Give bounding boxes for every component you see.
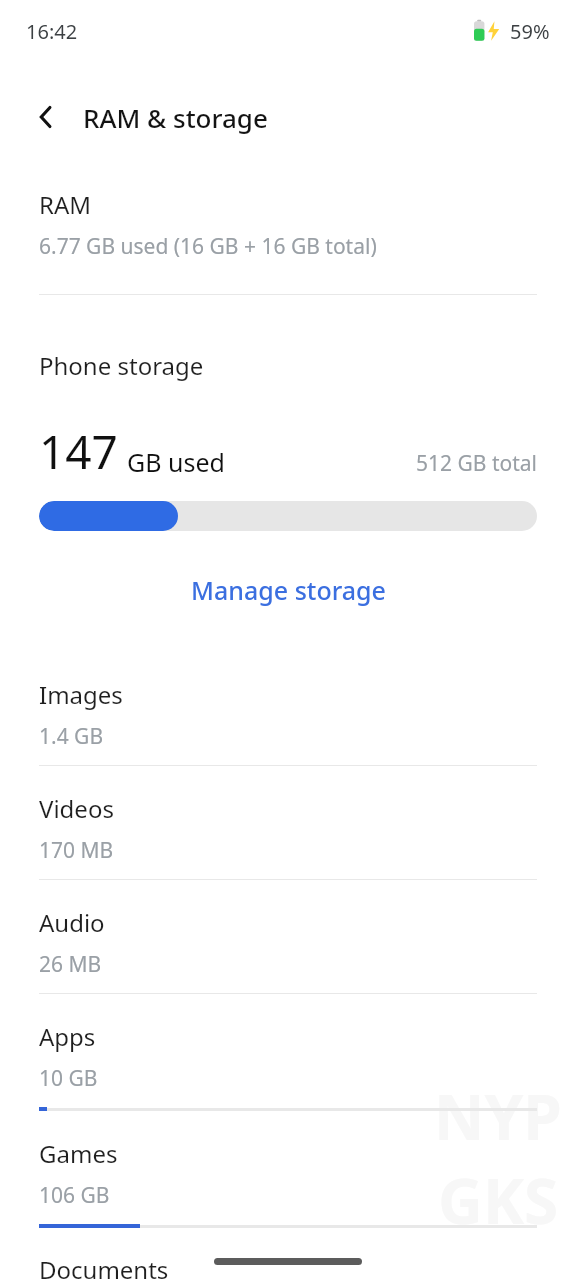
staticText: 26 MB xyxy=(39,950,102,979)
staticText: Phone storage xyxy=(39,349,204,382)
button[interactable]: Documents xyxy=(0,1228,576,1280)
staticText: 59% xyxy=(510,18,550,45)
staticText: GKS xyxy=(438,1158,559,1242)
staticText: Apps xyxy=(39,1020,96,1053)
staticText: 10 GB xyxy=(39,1064,98,1093)
staticText: 106 GB xyxy=(39,1181,110,1210)
button[interactable]: RAM xyxy=(0,146,576,261)
button[interactable]: Images xyxy=(0,652,576,766)
staticText: 147 xyxy=(39,420,118,483)
staticText: Videos xyxy=(39,792,114,825)
staticText: NYP xyxy=(434,1074,562,1158)
button[interactable]: Videos xyxy=(0,766,576,880)
button[interactable]: Audio xyxy=(0,880,576,994)
staticText: RAM & storage xyxy=(83,100,268,135)
staticText: Audio xyxy=(39,906,105,939)
staticText: RAM xyxy=(39,188,92,221)
button[interactable]: Apps xyxy=(0,994,576,1111)
staticText: Documents xyxy=(39,1253,169,1280)
button[interactable]: Back xyxy=(22,93,70,141)
staticText: Manage storage xyxy=(191,573,386,607)
staticText: 170 MB xyxy=(39,836,114,865)
button[interactable]: Manage storage xyxy=(0,573,576,607)
staticText: Images xyxy=(39,678,123,711)
staticText: GB used xyxy=(127,445,225,479)
staticText: 1.4 GB xyxy=(39,722,104,751)
staticText: 6.77 GB used (16 GB + 16 GB total) xyxy=(39,232,377,261)
button[interactable]: Games xyxy=(0,1111,576,1228)
staticText: Games xyxy=(39,1137,118,1170)
staticText: 16:42 xyxy=(26,18,78,45)
staticText: 512 GB total xyxy=(416,449,537,478)
